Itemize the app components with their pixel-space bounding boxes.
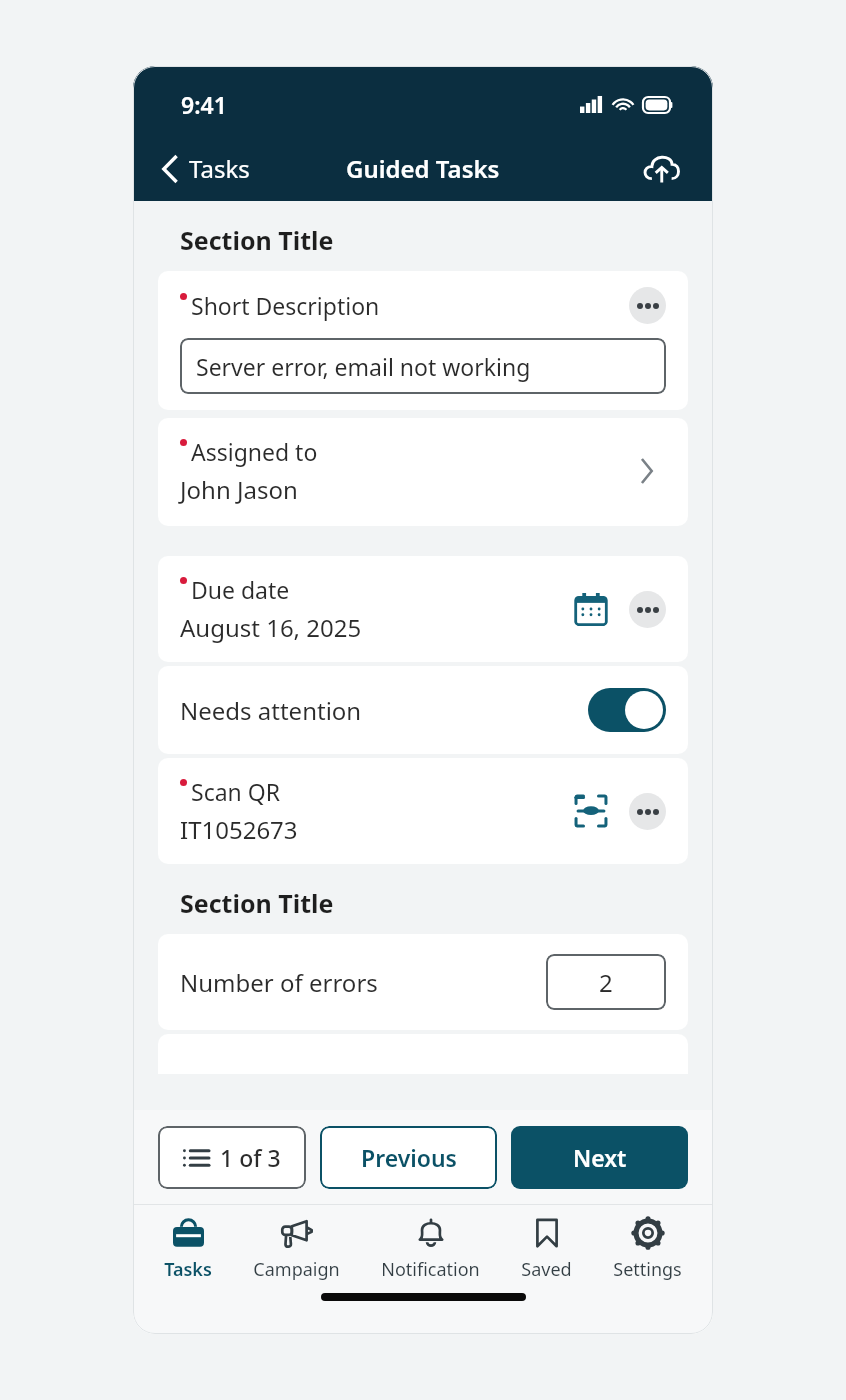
button[interactable]: Next bbox=[511, 1126, 688, 1189]
button[interactable]: 1 of 3 bbox=[158, 1126, 306, 1189]
button[interactable]: Short Description bbox=[158, 271, 688, 410]
button[interactable]: Needs attention toggle bbox=[588, 688, 666, 732]
staticText: Due date bbox=[191, 574, 290, 605]
staticText: Settings bbox=[613, 1257, 682, 1282]
staticText: Number of errors bbox=[180, 966, 546, 999]
button[interactable]: Open assignee bbox=[626, 451, 666, 491]
staticText: 9:41 bbox=[181, 89, 227, 120]
staticText: Section Title bbox=[180, 223, 334, 257]
staticText: Scan QR bbox=[191, 776, 281, 807]
button[interactable]: Assigned to bbox=[158, 418, 688, 526]
button[interactable]: More options bbox=[629, 793, 666, 830]
staticText: Tasks bbox=[164, 1257, 212, 1282]
button[interactable]: Scan QR bbox=[158, 758, 688, 864]
staticText: 1 of 3 bbox=[220, 1142, 281, 1173]
button[interactable]: Campaign bbox=[243, 1210, 350, 1288]
button[interactable]: Settings bbox=[603, 1210, 692, 1288]
staticText: Saved bbox=[521, 1257, 572, 1282]
button[interactable]: Tasks bbox=[155, 146, 258, 191]
staticText: Next bbox=[573, 1142, 627, 1173]
button[interactable]: Upload to cloud bbox=[637, 145, 685, 193]
button[interactable]: More options bbox=[629, 287, 666, 324]
staticText: Notification bbox=[381, 1257, 480, 1282]
button[interactable]: Needs attention bbox=[158, 666, 688, 754]
staticText: Guided Tasks bbox=[346, 152, 500, 185]
staticText: IT1052673 bbox=[180, 813, 298, 846]
staticText: Short Description bbox=[191, 290, 380, 321]
staticText: John Jason bbox=[180, 473, 298, 506]
button[interactable]: Due date bbox=[158, 556, 688, 662]
staticText: Campaign bbox=[253, 1257, 340, 1282]
staticText: Needs attention bbox=[180, 694, 588, 727]
button[interactable]: Server error, email not working bbox=[180, 338, 666, 394]
staticText: Assigned to bbox=[191, 436, 318, 467]
staticText: Tasks bbox=[189, 152, 250, 185]
button[interactable]: Scan QR code bbox=[569, 789, 613, 833]
staticText: Server error, email not working bbox=[196, 351, 531, 382]
button[interactable]: Saved bbox=[511, 1210, 582, 1288]
staticText: Previous bbox=[361, 1142, 457, 1173]
button[interactable]: Previous bbox=[320, 1126, 497, 1189]
button[interactable]: Tasks bbox=[154, 1210, 222, 1288]
button[interactable]: Number of errors bbox=[158, 934, 688, 1030]
button[interactable]: 2 bbox=[546, 954, 666, 1010]
staticText: Section Title bbox=[180, 886, 334, 920]
button[interactable]: More options bbox=[629, 591, 666, 628]
button[interactable]: Pick date bbox=[569, 587, 613, 631]
button[interactable]: Notification bbox=[371, 1210, 490, 1288]
staticText: 2 bbox=[599, 966, 613, 999]
staticText: August 16, 2025 bbox=[180, 611, 362, 644]
